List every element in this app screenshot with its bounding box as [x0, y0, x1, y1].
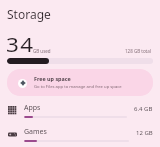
staticText: Storage — [7, 6, 51, 22]
button[interactable]: Games — [0, 123, 160, 145]
button[interactable]: Free up space — [7, 69, 153, 96]
staticText: 128 GB total — [125, 48, 151, 54]
staticText: 34 — [6, 32, 35, 58]
staticText: GB used — [33, 48, 51, 54]
button[interactable]: Apps — [0, 99, 160, 121]
staticText: 6.4 GB — [134, 105, 153, 113]
staticText: Apps — [24, 103, 41, 113]
staticText: Free up space — [34, 75, 71, 82]
staticText: Go to Files app to manage and free up sp… — [34, 84, 122, 90]
staticText: Games — [24, 127, 47, 137]
staticText: 12 GB — [136, 129, 153, 137]
